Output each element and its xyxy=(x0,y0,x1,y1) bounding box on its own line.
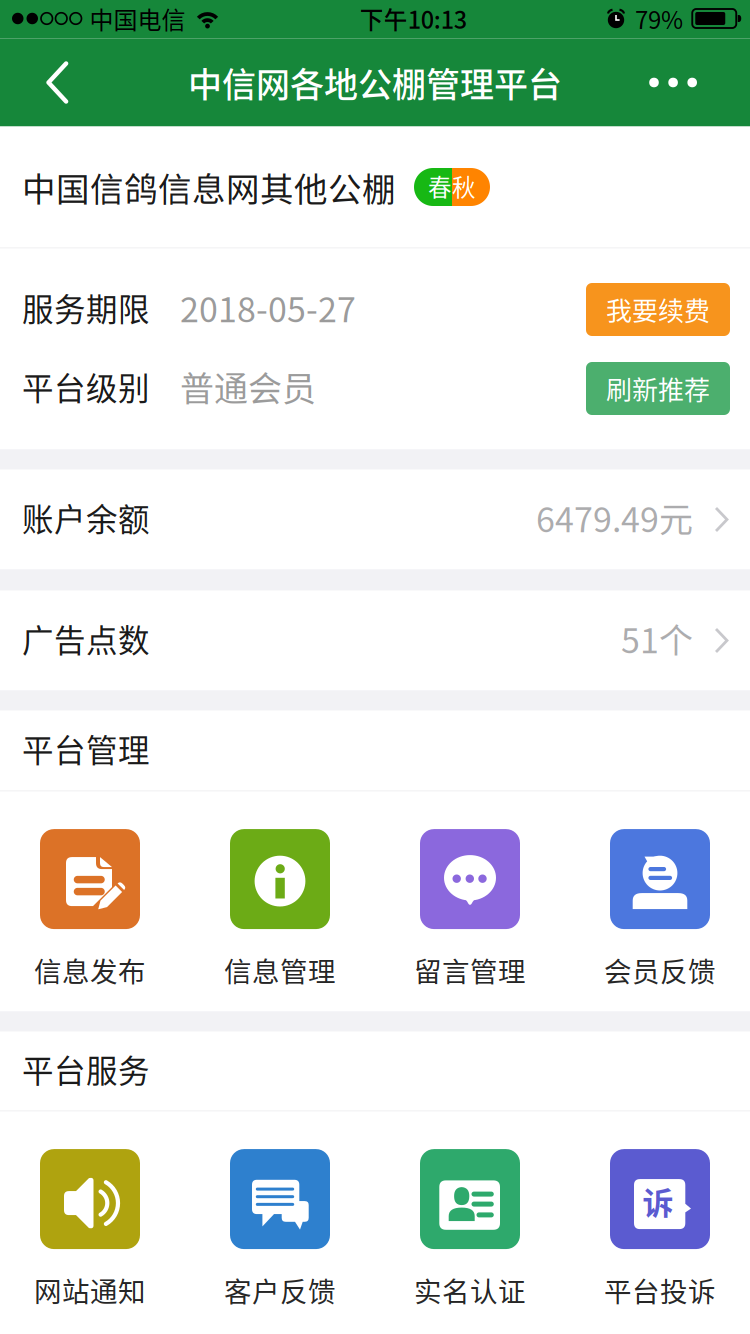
staticText: 实名认证 xyxy=(414,1270,526,1310)
button[interactable]: Back xyxy=(0,38,108,126)
staticText: 信息发布 xyxy=(34,950,146,990)
staticText: 中信网各地公棚管理平台 xyxy=(188,58,562,107)
button[interactable]: 诉 xyxy=(595,1152,725,1306)
staticText: 网站通知 xyxy=(34,1270,146,1310)
button[interactable]: 实名认证 xyxy=(405,1152,535,1306)
button[interactable]: 网站通知 xyxy=(25,1152,155,1306)
staticText: 留言管理 xyxy=(414,950,526,990)
staticText: 平台服务 xyxy=(22,1046,150,1092)
staticText: 广告点数 xyxy=(22,616,150,661)
staticText: 客户反馈 xyxy=(224,1270,336,1310)
staticText: 下午10:13 xyxy=(360,1,467,35)
staticText: 诉 xyxy=(642,1179,673,1223)
staticText: 刷新推荐 xyxy=(606,370,710,407)
staticText: 普通会员 xyxy=(180,362,316,411)
staticText: 平台管理 xyxy=(22,726,150,771)
staticText: 79% xyxy=(635,1,683,36)
staticText: 2018-05-27 xyxy=(180,283,356,332)
staticText: 平台投诉 xyxy=(604,1270,716,1310)
button[interactable]: 账户余额 xyxy=(0,469,750,569)
staticText: 会员反馈 xyxy=(604,950,716,990)
button[interactable]: 会员反馈 xyxy=(595,832,725,986)
button[interactable]: 广告点数 xyxy=(0,590,750,690)
button[interactable]: More options xyxy=(609,38,750,126)
staticText: 中国信鸽信息网其他公棚 xyxy=(22,163,396,211)
button[interactable]: 信息发布 xyxy=(25,832,155,986)
staticText: 服务期限 xyxy=(22,285,150,330)
staticText: 春秋 xyxy=(428,169,476,203)
button[interactable]: 刷新推荐 xyxy=(586,362,730,415)
button[interactable]: 留言管理 xyxy=(405,832,535,986)
button[interactable]: 客户反馈 xyxy=(215,1152,345,1306)
button[interactable]: 信息管理 xyxy=(215,832,345,986)
staticText: 平台级别 xyxy=(22,364,150,409)
staticText: 中国电信 xyxy=(89,1,185,36)
staticText: 信息管理 xyxy=(224,950,336,990)
staticText: 51个 xyxy=(621,614,693,663)
staticText: 6479.49元 xyxy=(536,493,693,542)
staticText: 账户余额 xyxy=(22,495,150,540)
button[interactable]: 我要续费 xyxy=(586,283,730,336)
staticText: 我要续费 xyxy=(606,291,710,328)
